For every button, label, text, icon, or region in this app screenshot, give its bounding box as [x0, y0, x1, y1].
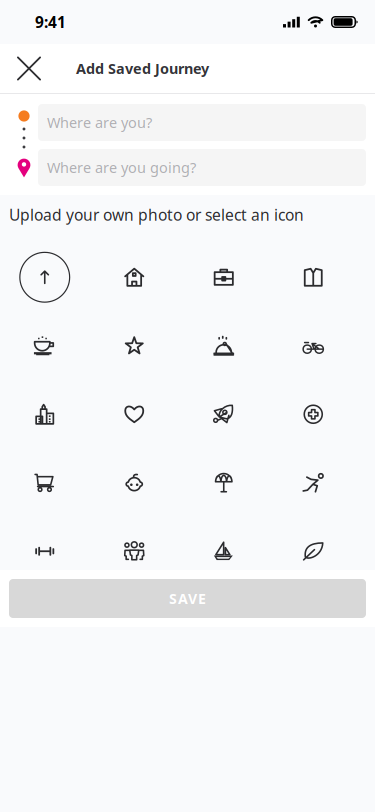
button[interactable]: Running	[268, 448, 358, 517]
button[interactable]: SAVE	[0, 570, 375, 627]
button[interactable]: Where are you going?	[38, 149, 366, 186]
button[interactable]: Friends	[89, 517, 179, 585]
button[interactable]: Restaurant	[179, 311, 268, 380]
button[interactable]: City	[0, 380, 89, 448]
button[interactable]: Book	[268, 243, 358, 311]
button[interactable]: Rocket	[179, 380, 268, 448]
staticText: Where are you going?	[47, 158, 196, 177]
button[interactable]: Shopping	[0, 448, 89, 517]
button[interactable]: Sailing	[179, 517, 268, 585]
button[interactable]: Nature	[268, 517, 358, 585]
button[interactable]: Medical	[268, 380, 358, 448]
button[interactable]: Close	[0, 44, 76, 92]
staticText: SAVE	[169, 589, 206, 608]
button[interactable]: Favourite	[89, 311, 179, 380]
button[interactable]: Cycling	[268, 311, 358, 380]
button[interactable]: Gym	[0, 517, 89, 585]
button[interactable]: Loved	[89, 380, 179, 448]
staticText: Where are you?	[47, 113, 152, 132]
button[interactable]: Where are you?	[38, 104, 366, 141]
staticText: Add Saved Journey	[76, 59, 209, 78]
button[interactable]: Work	[179, 243, 268, 311]
button[interactable]: Cafe	[0, 311, 89, 380]
button[interactable]: Upload photo	[0, 243, 89, 311]
button[interactable]: Beach	[179, 448, 268, 517]
button[interactable]: Home	[89, 243, 179, 311]
staticText: 9:41	[35, 11, 66, 33]
button[interactable]: Childcare	[89, 448, 179, 517]
staticText: Upload your own photo or select an icon	[9, 204, 304, 225]
